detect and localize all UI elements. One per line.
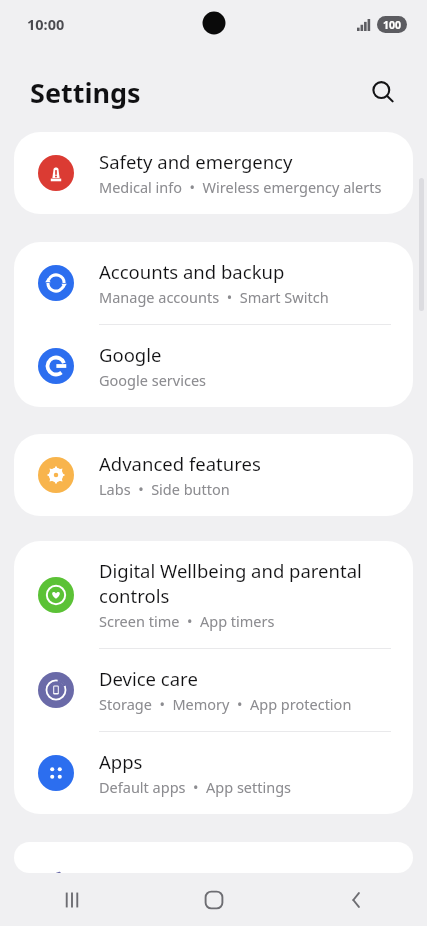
button[interactable]: Back [285,873,427,926]
staticText: Device care [99,666,198,691]
staticText: Settings [30,74,141,111]
staticText: Medical info • Wireless emergency alerts [99,177,382,197]
button[interactable]: Home [143,873,285,926]
staticText: Google [99,342,162,367]
staticText: Advanced features [99,451,261,476]
staticText: Digital Wellbeing and parental controls [99,558,393,608]
button[interactable]: Device care [14,649,413,731]
staticText: 100 [383,18,402,32]
staticText: 10:00 [27,14,65,34]
button[interactable]: Google [14,325,413,407]
staticText: Safety and emergency [99,149,293,174]
staticText: Screen time • App timers [99,611,275,631]
button[interactable]: Search [361,70,405,114]
button[interactable]: Recents [0,873,143,926]
button[interactable]: Advanced features [14,434,413,516]
staticText: Accounts and backup [99,259,285,284]
button[interactable]: Apps [14,732,413,814]
staticText: Storage • Memory • App protection [99,694,352,714]
button[interactable]: Digital Wellbeing and parental controls [14,541,413,648]
staticText: Apps [99,749,143,774]
staticText: Google services [99,370,207,390]
button[interactable]: Accounts and backup [14,242,413,324]
button[interactable]: Safety and emergency [14,132,413,214]
staticText: Default apps • App settings [99,777,292,797]
staticText: Labs • Side button [99,479,230,499]
staticText: Manage accounts • Smart Switch [99,287,329,307]
